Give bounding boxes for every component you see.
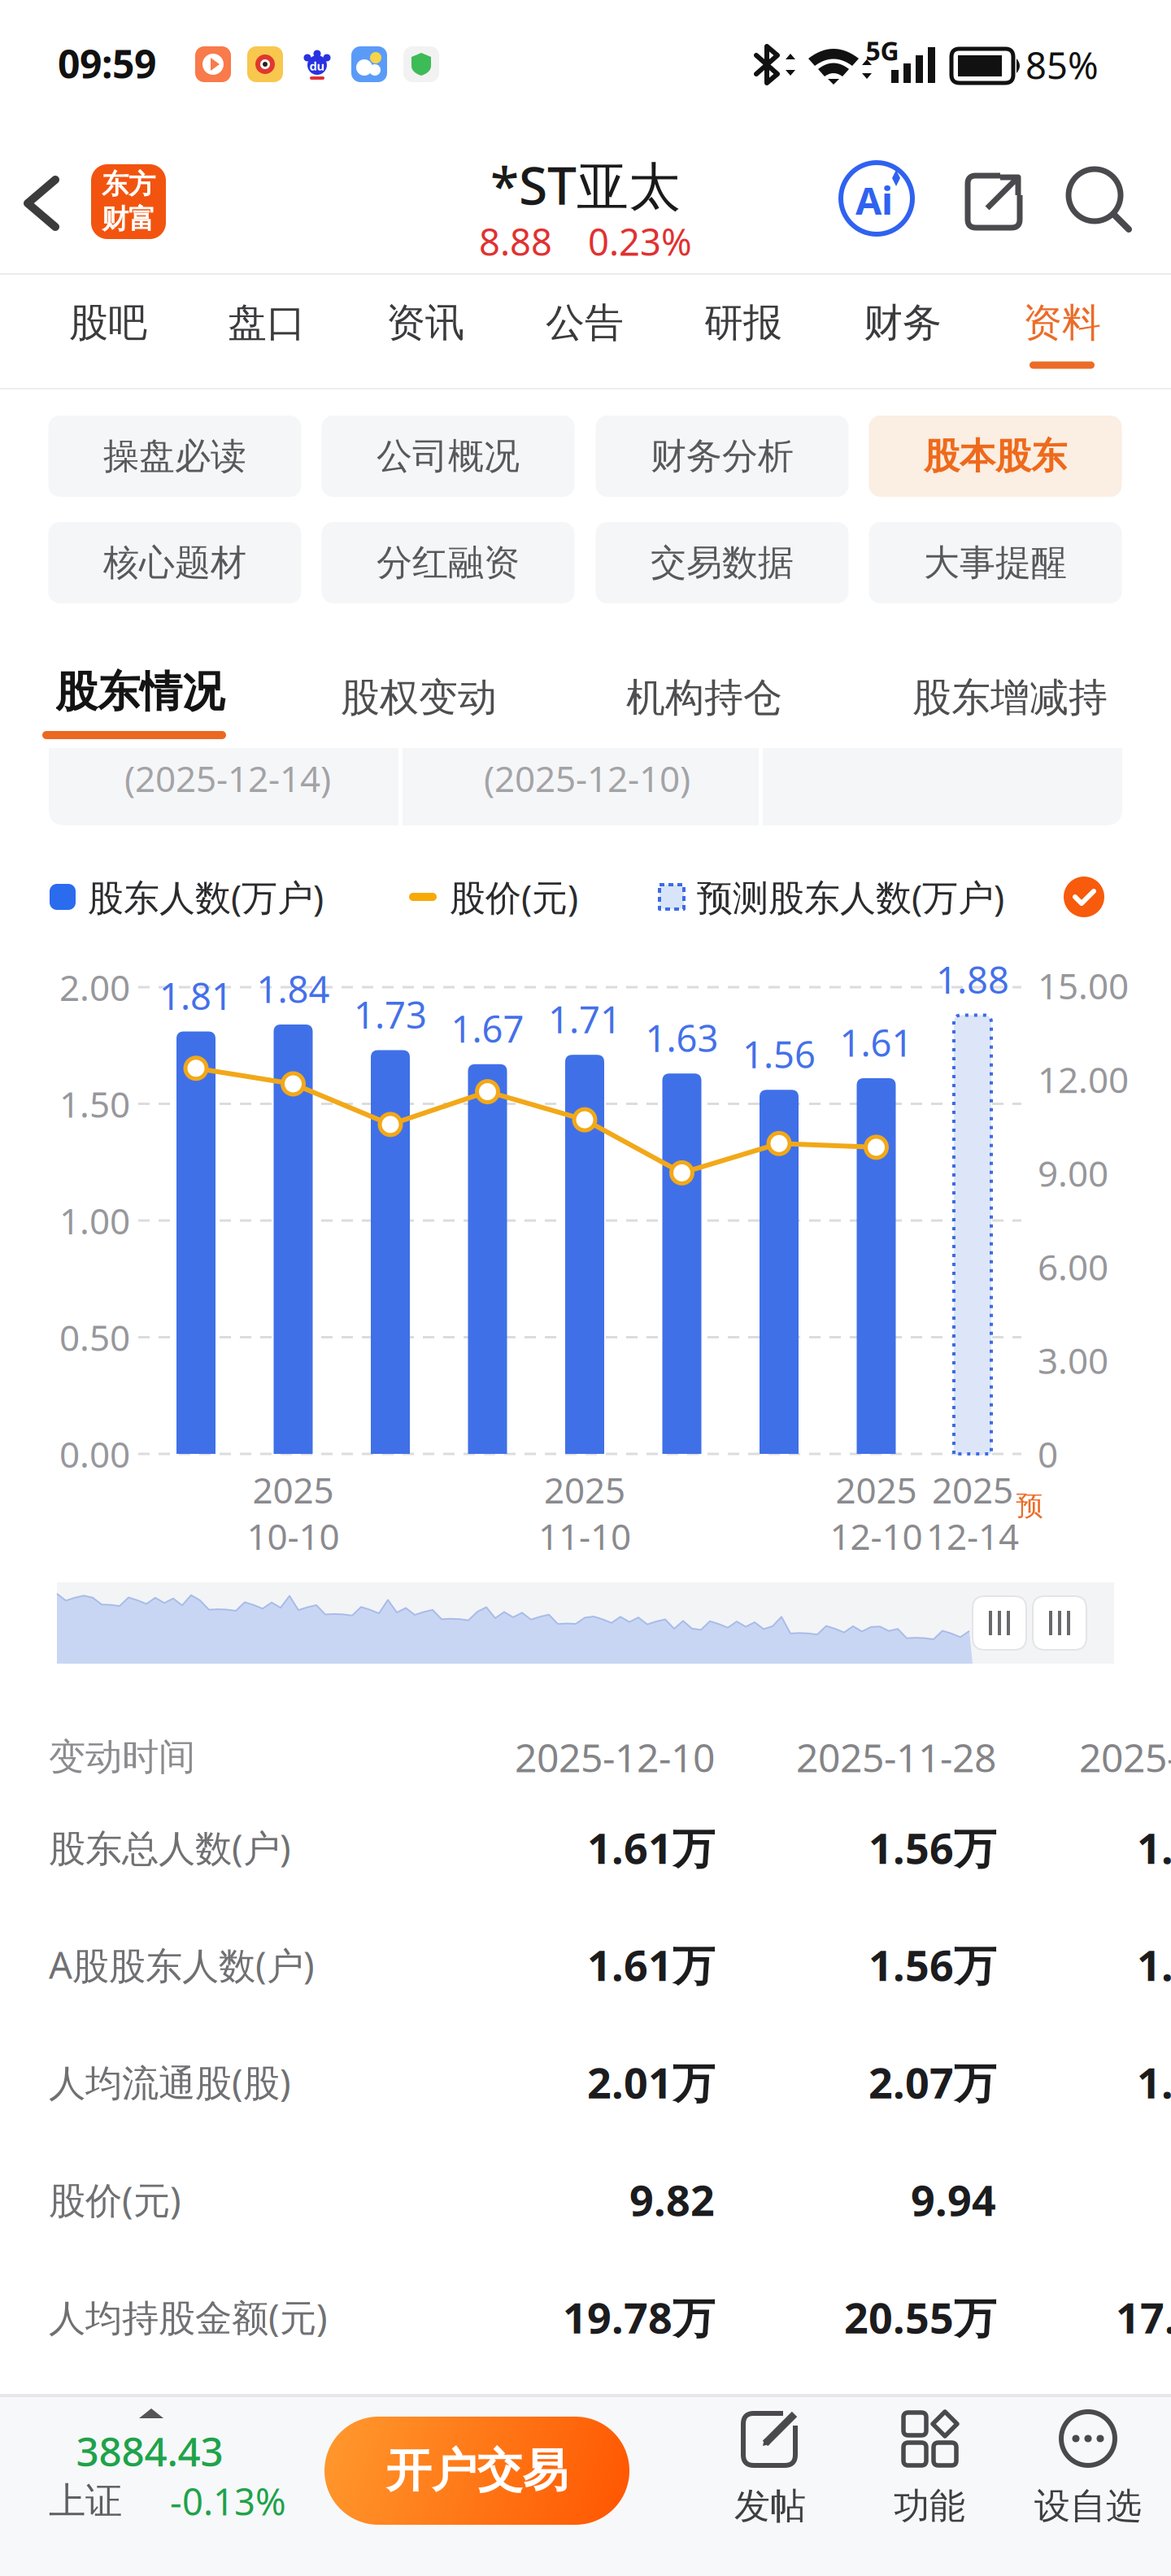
staticText: 财务分析 — [651, 434, 794, 478]
button[interactable]: 股东情况 — [42, 646, 237, 752]
staticText: 公告 — [546, 299, 624, 347]
staticText: 操盘必读 — [103, 434, 246, 478]
staticText: 1.71 — [548, 995, 621, 1043]
staticText: 开户交易 — [386, 2443, 568, 2499]
staticText: 0.23% — [588, 217, 692, 266]
staticText: 9.00 — [1038, 1149, 1108, 1197]
staticText: 财务 — [864, 299, 942, 347]
staticText: 1.73 — [354, 990, 427, 1039]
staticText: (2025-12-14) — [124, 754, 331, 802]
button[interactable]: Back — [26, 155, 75, 251]
staticText: 股东人数(万户) — [88, 873, 324, 921]
staticText: 股东情况 — [55, 666, 224, 718]
staticText: 1.88 — [936, 955, 1009, 1004]
staticText: 功能 — [894, 2484, 965, 2528]
staticText: 股价(元) — [450, 873, 578, 921]
button[interactable]: 公告 — [528, 294, 642, 376]
button[interactable]: 操盘必读 — [48, 416, 301, 497]
staticText: 机构持仓 — [626, 674, 782, 722]
staticText: 2025 — [932, 1466, 1013, 1513]
staticText: 85% — [1025, 41, 1099, 90]
button[interactable]: 设自选 — [1034, 2409, 1142, 2528]
button[interactable]: Share — [964, 172, 1023, 231]
staticText: 09:59 — [58, 37, 156, 89]
button[interactable]: Ai 助手 — [838, 160, 915, 237]
button[interactable]: Search — [1065, 166, 1134, 234]
button[interactable]: 股本股东 — [869, 416, 1122, 497]
button[interactable]: 股东增减持 — [906, 662, 1114, 733]
staticText: (2025-12-10) — [484, 754, 690, 802]
staticText: 股吧 — [69, 299, 147, 347]
button[interactable]: 财务分析 — [596, 416, 849, 497]
staticText: 1.00 — [59, 1197, 130, 1244]
staticText: 东方 — [102, 168, 155, 201]
staticText: 1.56万 — [868, 1819, 996, 1876]
staticText: 交易数据 — [651, 541, 794, 585]
button[interactable]: 财务 — [846, 294, 960, 376]
staticText: 2025 — [544, 1466, 625, 1513]
staticText: 9.82 — [629, 2171, 715, 2228]
button[interactable]: 盘口 — [210, 294, 324, 376]
button[interactable]: 研报 — [686, 294, 800, 376]
staticText: 1.63 — [645, 1013, 718, 1062]
staticText: 19.78万 — [563, 2289, 715, 2345]
staticText: 1.52万 — [1137, 1819, 1171, 1876]
button[interactable]: 股权变动 — [334, 662, 503, 733]
staticText: 1.98万 — [1137, 2054, 1171, 2110]
staticText: 1.61万 — [587, 1819, 715, 1876]
button[interactable]: 分红融资 — [322, 522, 575, 603]
button[interactable]: 范围控制 — [972, 1595, 1027, 1651]
staticText: 设自选 — [1034, 2484, 1142, 2528]
staticText: 财富 — [102, 202, 155, 236]
button[interactable]: 大事提醒 — [869, 522, 1122, 603]
button[interactable]: 资讯 — [368, 294, 482, 376]
staticText: 3884.43 — [76, 2424, 223, 2477]
staticText: 发帖 — [734, 2484, 806, 2528]
staticText: 公司概况 — [377, 434, 520, 478]
staticText: Ai — [855, 175, 893, 225]
staticText: 1.50 — [59, 1080, 130, 1128]
staticText: 股东增减持 — [912, 674, 1108, 722]
staticText: 核心题材 — [103, 541, 246, 585]
staticText: 2.00 — [59, 963, 130, 1011]
staticText: 预测股东人数(万户) — [697, 873, 1004, 921]
staticText: 9.94 — [911, 2171, 996, 2228]
staticText: 2025-12-10 — [515, 1731, 715, 1783]
staticText: 12-14 — [926, 1512, 1019, 1560]
staticText: 变动时间 — [49, 1735, 195, 1780]
button[interactable]: 股吧 — [51, 294, 165, 376]
staticText: 2025-11-28 — [796, 1731, 996, 1783]
staticText: du — [309, 58, 325, 74]
staticText: 大事提醒 — [924, 541, 1067, 585]
button[interactable]: 公司概况 — [322, 416, 575, 497]
staticText: 股权变动 — [341, 674, 497, 722]
button[interactable]: 交易数据 — [596, 522, 849, 603]
button[interactable]: 范围控制 — [1032, 1595, 1087, 1651]
staticText: 0.50 — [59, 1313, 130, 1361]
staticText: 5G — [866, 33, 899, 68]
staticText: 2.01万 — [587, 2054, 715, 2110]
staticText: 资料 — [1023, 299, 1101, 347]
button[interactable]: 东方财富 — [91, 164, 166, 239]
button[interactable]: 机构持仓 — [620, 662, 789, 733]
staticText: 1.61万 — [587, 1936, 715, 1993]
staticText: 上证 — [49, 2479, 122, 2524]
button[interactable]: 上证指数 — [11, 2400, 288, 2530]
button[interactable]: 发帖 — [734, 2409, 806, 2528]
staticText: 1.61 — [840, 1018, 913, 1067]
button[interactable]: 开户交易 — [324, 2417, 629, 2525]
staticText: 3.00 — [1038, 1336, 1108, 1384]
staticText: 1.56 — [742, 1030, 816, 1079]
staticText: 2025 — [836, 1466, 917, 1513]
staticText: 2.07万 — [868, 2054, 996, 2110]
staticText: 研报 — [704, 299, 782, 347]
button[interactable]: 资料 — [1005, 294, 1119, 376]
button[interactable]: 显示预测 — [1064, 877, 1104, 917]
staticText: 分红融资 — [377, 541, 520, 585]
button[interactable]: 功能 — [894, 2409, 965, 2528]
staticText: 12-10 — [830, 1512, 923, 1560]
staticText: 12.00 — [1038, 1055, 1129, 1103]
staticText: 15.00 — [1038, 962, 1129, 1009]
staticText: 人均持股金额(元) — [49, 2293, 328, 2341]
button[interactable]: 核心题材 — [48, 522, 301, 603]
